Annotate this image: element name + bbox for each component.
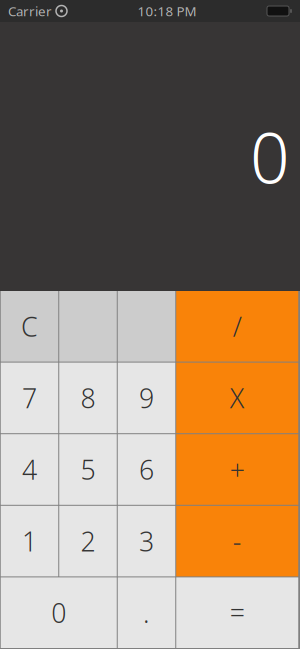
staticText: Carrier	[8, 2, 52, 20]
button[interactable]: 2	[59, 506, 118, 577]
staticText: C	[21, 309, 38, 344]
staticText: +	[230, 452, 245, 487]
staticText: .	[143, 595, 150, 630]
staticText: X	[230, 380, 245, 416]
button[interactable]: /	[176, 291, 299, 363]
staticText: 3	[139, 523, 154, 559]
button[interactable]: 6	[118, 434, 176, 506]
button[interactable]	[118, 291, 176, 363]
button[interactable]: C	[1, 291, 59, 363]
button[interactable]: 9	[118, 363, 176, 434]
button[interactable]: +	[176, 434, 299, 506]
staticText: 0	[250, 110, 290, 203]
staticText: 7	[22, 380, 37, 416]
staticText: 9	[139, 380, 154, 416]
button[interactable]: 0	[1, 577, 118, 649]
staticText: 1	[22, 523, 37, 559]
button[interactable]: 5	[59, 434, 118, 506]
staticText: 2	[80, 523, 95, 559]
staticText: =	[230, 595, 245, 630]
staticText: 8	[80, 380, 95, 416]
staticText: 6	[139, 452, 154, 487]
button[interactable]: 7	[1, 363, 59, 434]
button[interactable]: X	[176, 363, 299, 434]
button[interactable]: =	[176, 577, 299, 649]
button[interactable]	[59, 291, 118, 363]
button[interactable]: 4	[1, 434, 59, 506]
staticText: /	[233, 309, 242, 344]
staticText: 10:18 PM	[137, 2, 196, 20]
staticText: 0	[51, 595, 66, 630]
button[interactable]: 8	[59, 363, 118, 434]
button[interactable]: 3	[118, 506, 176, 577]
button[interactable]: -	[176, 506, 299, 577]
button[interactable]: 1	[1, 506, 59, 577]
button[interactable]: .	[118, 577, 176, 649]
staticText: 4	[22, 452, 37, 487]
staticText: 5	[80, 452, 95, 487]
staticText: -	[233, 523, 242, 559]
